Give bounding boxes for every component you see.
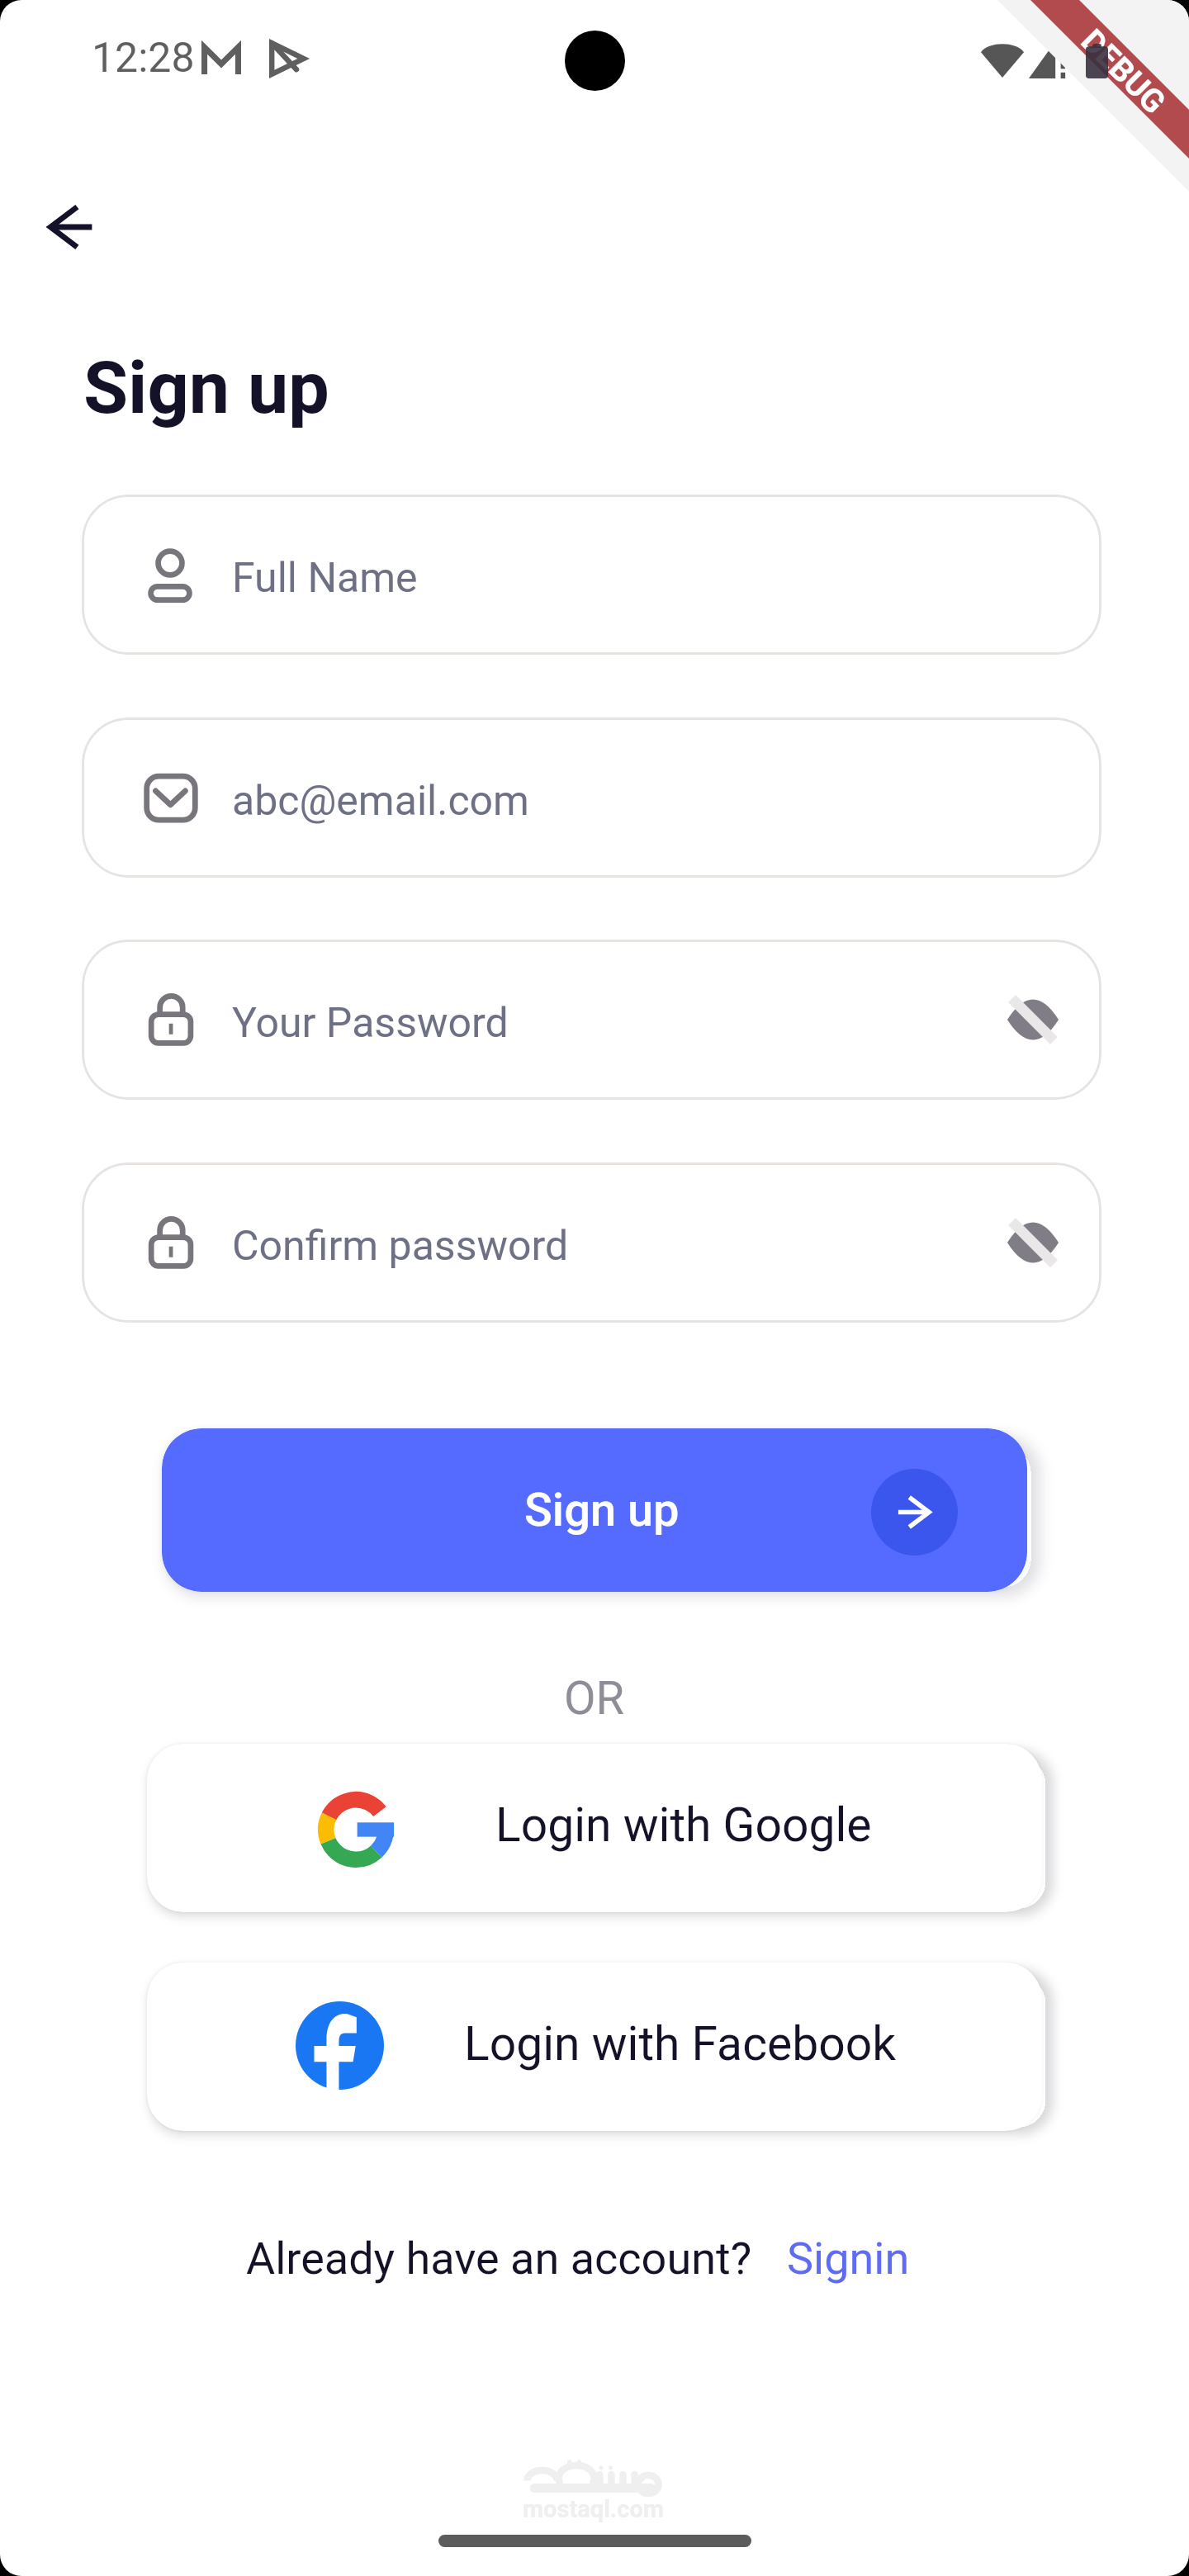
staticText: Login with Google: [495, 1797, 872, 1853]
button[interactable]: Confirm password: [82, 1163, 1101, 1323]
staticText: Signin: [787, 2233, 910, 2285]
button[interactable]: Continue: [871, 1469, 958, 1556]
staticText: Login with Facebook: [464, 2016, 897, 2072]
staticText: 12:28: [92, 34, 195, 83]
button[interactable]: Login with Google: [147, 1744, 1042, 1912]
button[interactable]: abc@email.com: [82, 717, 1101, 878]
staticText: Your Password: [232, 999, 509, 1048]
button[interactable]: Login with Facebook: [147, 1963, 1042, 2131]
button[interactable]: Show password: [995, 1205, 1071, 1281]
staticText: Confirm password: [232, 1222, 569, 1271]
button[interactable]: Sign up: [162, 1428, 1027, 1592]
staticText: Sign up: [83, 345, 329, 430]
staticText: abc@email.com: [232, 777, 529, 826]
staticText: Already have an account?: [246, 2233, 752, 2285]
staticText: OR: [564, 1671, 625, 1726]
staticText: DEBUG: [1073, 22, 1173, 122]
button[interactable]: Full Name: [82, 495, 1101, 655]
button[interactable]: Back: [23, 180, 116, 273]
staticText: Full Name: [232, 554, 418, 603]
staticText: mostaql.com: [523, 2495, 664, 2523]
button[interactable]: Signin: [787, 2233, 910, 2285]
button[interactable]: Show password: [995, 982, 1071, 1058]
button[interactable]: Your Password: [82, 940, 1101, 1100]
staticText: Sign up: [524, 1483, 680, 1537]
